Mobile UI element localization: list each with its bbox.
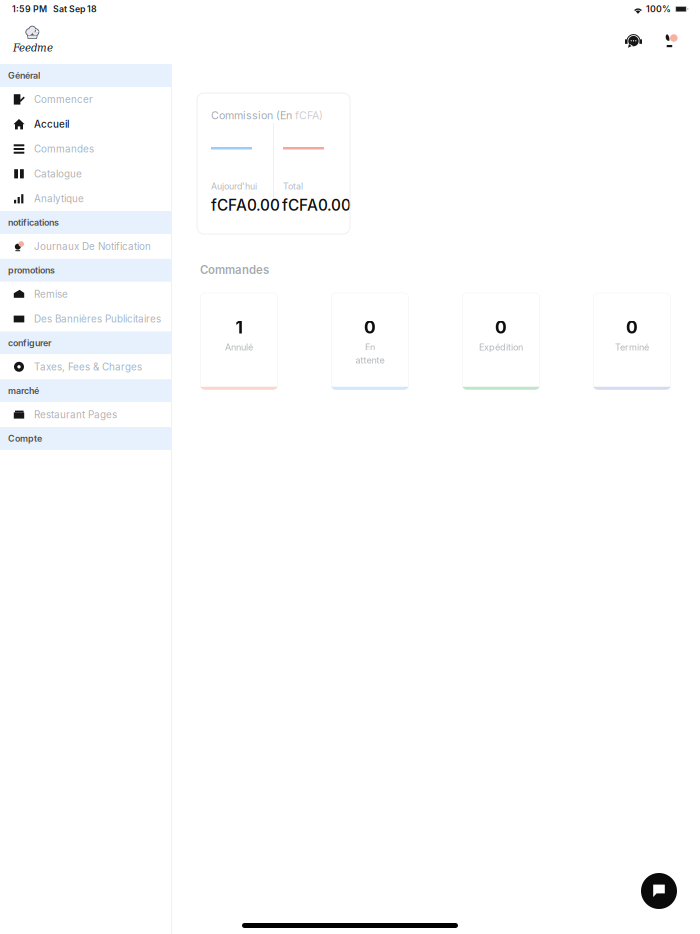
staticText: Taxes, Fees & Charges <box>34 361 142 373</box>
staticText: Commandes <box>34 143 94 155</box>
button[interactable]: Chat <box>641 873 677 909</box>
staticText: promotions <box>8 265 55 276</box>
staticText: fCFA0.00 <box>211 196 280 215</box>
staticText: Journaux De Notification <box>34 240 151 252</box>
staticText: Compte <box>8 433 42 444</box>
button[interactable]: Accueil <box>0 112 171 137</box>
staticText: marché <box>8 385 39 396</box>
staticText: Total <box>283 181 303 192</box>
button[interactable]: Notifications <box>660 29 683 53</box>
staticText: Général <box>8 70 40 81</box>
staticText: Commission (En <box>211 109 295 122</box>
staticText: Accueil <box>34 118 69 130</box>
staticText: 100% <box>646 4 671 14</box>
button[interactable]: Support <box>620 28 647 53</box>
staticText: Commandes <box>200 263 269 277</box>
staticText: Annulé <box>225 342 253 353</box>
button[interactable]: Taxes, Fees & Charges <box>0 354 171 379</box>
staticText: notifications <box>8 217 59 228</box>
staticText: 0 <box>495 317 507 338</box>
staticText: Des Bannières Publicitaires <box>34 313 161 325</box>
staticText: Feedme <box>13 42 53 54</box>
button[interactable]: Restaurant Pages <box>0 402 171 427</box>
button[interactable]: Analytique <box>0 186 171 211</box>
button[interactable]: Catalogue <box>0 161 171 186</box>
staticText: Aujourd'hui <box>211 181 257 192</box>
staticText: 1:59 PM <box>12 4 47 14</box>
button[interactable]: Feedme <box>0 25 55 57</box>
staticText: 0 <box>364 317 376 338</box>
button[interactable]: Journaux De Notification <box>0 234 171 259</box>
staticText: Catalogue <box>34 168 82 180</box>
staticText: attente <box>355 355 384 366</box>
staticText: Restaurant Pages <box>34 409 117 420</box>
button[interactable]: Commandes <box>0 137 171 161</box>
button[interactable]: 0 <box>462 293 540 390</box>
staticText: Analytique <box>34 193 84 204</box>
staticText: 1 <box>235 317 242 338</box>
button[interactable]: Commencer <box>0 87 171 112</box>
staticText: fCFA0.00 <box>282 196 351 215</box>
staticText: Expédition <box>479 342 523 353</box>
staticText: Commencer <box>34 93 93 105</box>
button[interactable]: Remise <box>0 282 171 307</box>
staticText: 0 <box>626 317 638 338</box>
button[interactable]: 0 <box>593 293 671 390</box>
staticText: Sat Sep 18 <box>53 4 97 14</box>
button[interactable]: 1 <box>200 293 278 390</box>
staticText: fCFA) <box>295 109 323 122</box>
button[interactable]: Des Bannières Publicitaires <box>0 307 171 331</box>
staticText: Terminé <box>615 342 649 353</box>
staticText: configurer <box>8 337 52 348</box>
staticText: En <box>365 342 375 353</box>
staticText: Remise <box>34 288 68 300</box>
button[interactable]: 0 <box>331 293 409 390</box>
